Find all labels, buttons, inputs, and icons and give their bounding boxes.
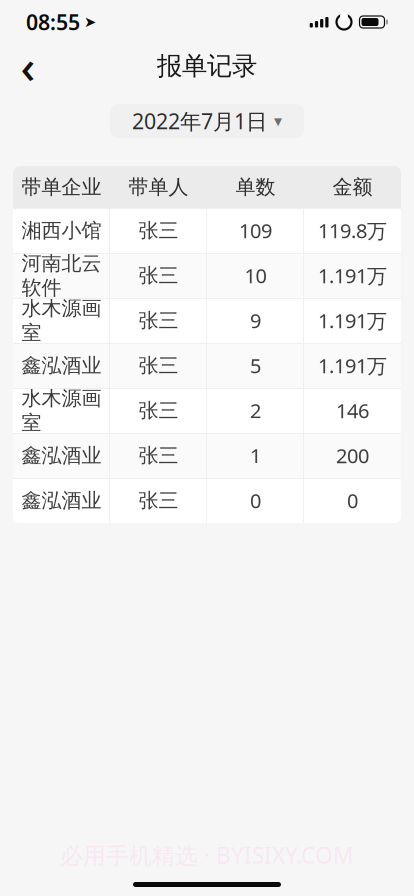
staticText: 鑫泓酒业	[21, 353, 101, 378]
staticText: 水木源画室	[21, 386, 101, 435]
staticText: 必用手机精选 · BYISIXY.COM	[60, 840, 354, 870]
staticText: 119.8万	[318, 217, 387, 244]
staticText: 200	[336, 442, 369, 469]
staticText: 2	[250, 397, 261, 424]
staticText: 张三	[138, 488, 178, 513]
staticText: 张三	[138, 218, 178, 243]
staticText: 1.191万	[318, 262, 387, 289]
button[interactable]: 2022年7月1日	[110, 104, 304, 138]
staticText: 张三	[138, 353, 178, 378]
staticText: 单数	[235, 175, 275, 199]
staticText: 1	[250, 442, 261, 469]
staticText: 0	[250, 487, 261, 514]
staticText: 146	[336, 397, 369, 424]
staticText: 10	[244, 262, 266, 289]
staticText: 张三	[138, 263, 178, 288]
staticText: 0	[347, 487, 358, 514]
staticText: 鑫泓酒业	[21, 488, 101, 513]
staticText: 金额	[332, 175, 372, 199]
staticText: 带单企业	[21, 175, 101, 199]
staticText: 08:55	[26, 8, 80, 36]
staticText: 湘西小馆	[21, 218, 101, 243]
staticText: ▾	[274, 112, 282, 130]
staticText: 1.191万	[318, 352, 387, 379]
staticText: 鑫泓酒业	[21, 443, 101, 468]
staticText: ➤	[84, 14, 96, 30]
button[interactable]: Back	[6, 44, 50, 88]
staticText: 张三	[138, 398, 178, 423]
staticText: 1.191万	[318, 307, 387, 334]
staticText: 109	[239, 217, 272, 244]
staticText: 5	[250, 352, 261, 379]
staticText: 带单人	[128, 175, 188, 199]
staticText: 2022年7月1日	[132, 107, 267, 135]
staticText: 9	[250, 307, 261, 334]
staticText: 报单记录	[157, 50, 257, 81]
staticText: ‹	[20, 36, 35, 96]
staticText: 河南北云软件	[21, 251, 101, 300]
staticText: 水木源画室	[21, 296, 101, 345]
staticText: 张三	[138, 308, 178, 333]
staticText: 张三	[138, 443, 178, 468]
